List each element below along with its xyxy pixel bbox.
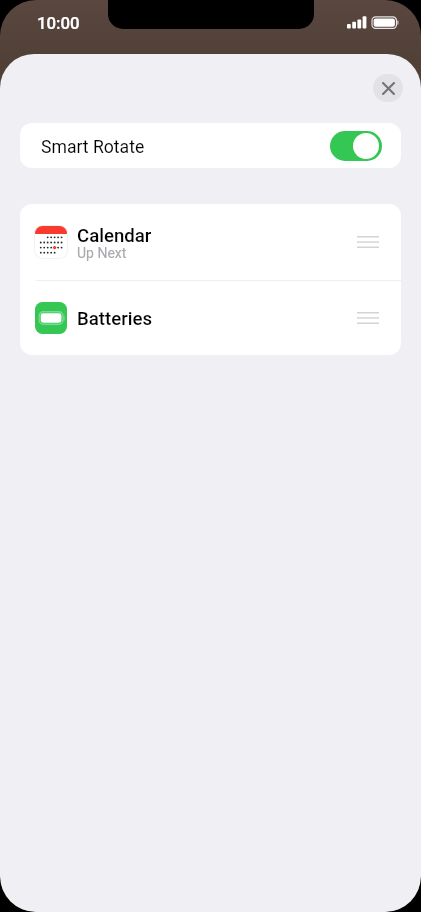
staticText: 10:00 <box>37 13 80 33</box>
button[interactable]: Smart Rotate <box>20 123 401 168</box>
button[interactable]: Batteries <box>20 281 401 355</box>
button[interactable]: Reorder Batteries <box>348 298 388 338</box>
staticText: Batteries <box>77 308 153 330</box>
button[interactable]: Reorder Calendar <box>348 222 388 262</box>
button[interactable]: Smart Rotate toggle <box>330 131 382 161</box>
staticText: Up Next <box>77 245 127 261</box>
staticText: Calendar <box>77 225 152 247</box>
button[interactable]: Close <box>373 74 403 102</box>
button[interactable]: Calendar <box>20 204 401 280</box>
staticText: Smart Rotate <box>41 137 145 158</box>
